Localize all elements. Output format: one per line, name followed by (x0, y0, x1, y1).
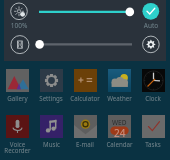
staticText: Music (43, 140, 60, 148)
button[interactable]: Clock (136, 69, 170, 109)
staticText: Clock (145, 94, 161, 102)
button[interactable]: Weather (102, 69, 136, 109)
staticText: Calculator (70, 94, 100, 102)
staticText: Tasks (145, 140, 161, 148)
button[interactable]: Settings (34, 69, 68, 109)
button[interactable]: WED (102, 115, 136, 155)
staticText: WED (112, 118, 127, 127)
staticText: Auto (141, 21, 161, 30)
staticText: 100% (9, 21, 29, 30)
staticText: Weather (107, 94, 132, 102)
button[interactable]: E-mail (68, 115, 102, 155)
staticText: E-mail (76, 140, 94, 148)
staticText: Gallery (7, 94, 28, 102)
staticText: Voice Recorder (4, 140, 31, 155)
staticText: 24 (114, 126, 126, 140)
button[interactable]: Music (34, 115, 68, 155)
button[interactable]: Tasks (136, 115, 170, 155)
button[interactable]: Voice Recorder (0, 115, 34, 155)
button[interactable]: Gallery (0, 69, 34, 109)
staticText: Calendar (106, 140, 133, 148)
staticText: Settings (39, 94, 63, 102)
button[interactable]: Calculator (68, 69, 102, 109)
